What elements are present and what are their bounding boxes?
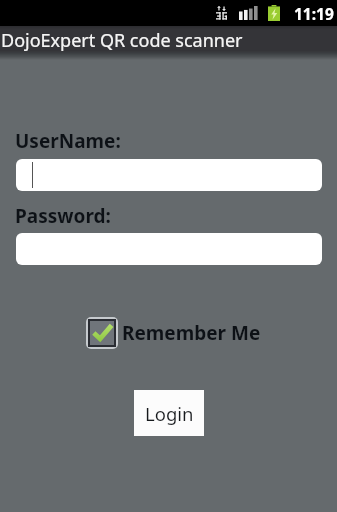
- button[interactable]: Remember Me checkbox: [86, 317, 261, 349]
- staticText: 11:19: [294, 3, 334, 24]
- button[interactable]: [16, 233, 322, 265]
- staticText: DojoExpert QR code scanner: [1, 28, 243, 53]
- other: Remember Me checkbox: [90, 321, 114, 345]
- staticText: UserName:: [15, 128, 121, 154]
- staticText: Remember Me: [122, 320, 261, 346]
- button[interactable]: Login: [134, 390, 204, 436]
- staticText: Login: [145, 401, 194, 426]
- button[interactable]: [16, 159, 322, 191]
- staticText: Password:: [15, 203, 111, 229]
